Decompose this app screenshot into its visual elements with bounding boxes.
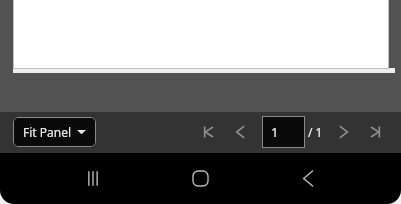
button[interactable]: Previous page bbox=[228, 120, 252, 144]
button[interactable]: Home bbox=[183, 161, 217, 195]
button[interactable]: Next page bbox=[332, 120, 356, 144]
staticText: Fit Panel bbox=[23, 124, 72, 140]
button[interactable]: Recents bbox=[76, 161, 110, 195]
button[interactable]: Fit Panel bbox=[13, 117, 96, 147]
button[interactable]: First page bbox=[196, 120, 220, 144]
button[interactable]: Last page bbox=[364, 120, 388, 144]
button[interactable]: Back bbox=[291, 161, 325, 195]
button[interactable]: 1 bbox=[262, 116, 305, 148]
staticText: 1 bbox=[271, 123, 279, 141]
staticText: / 1 bbox=[308, 124, 323, 140]
